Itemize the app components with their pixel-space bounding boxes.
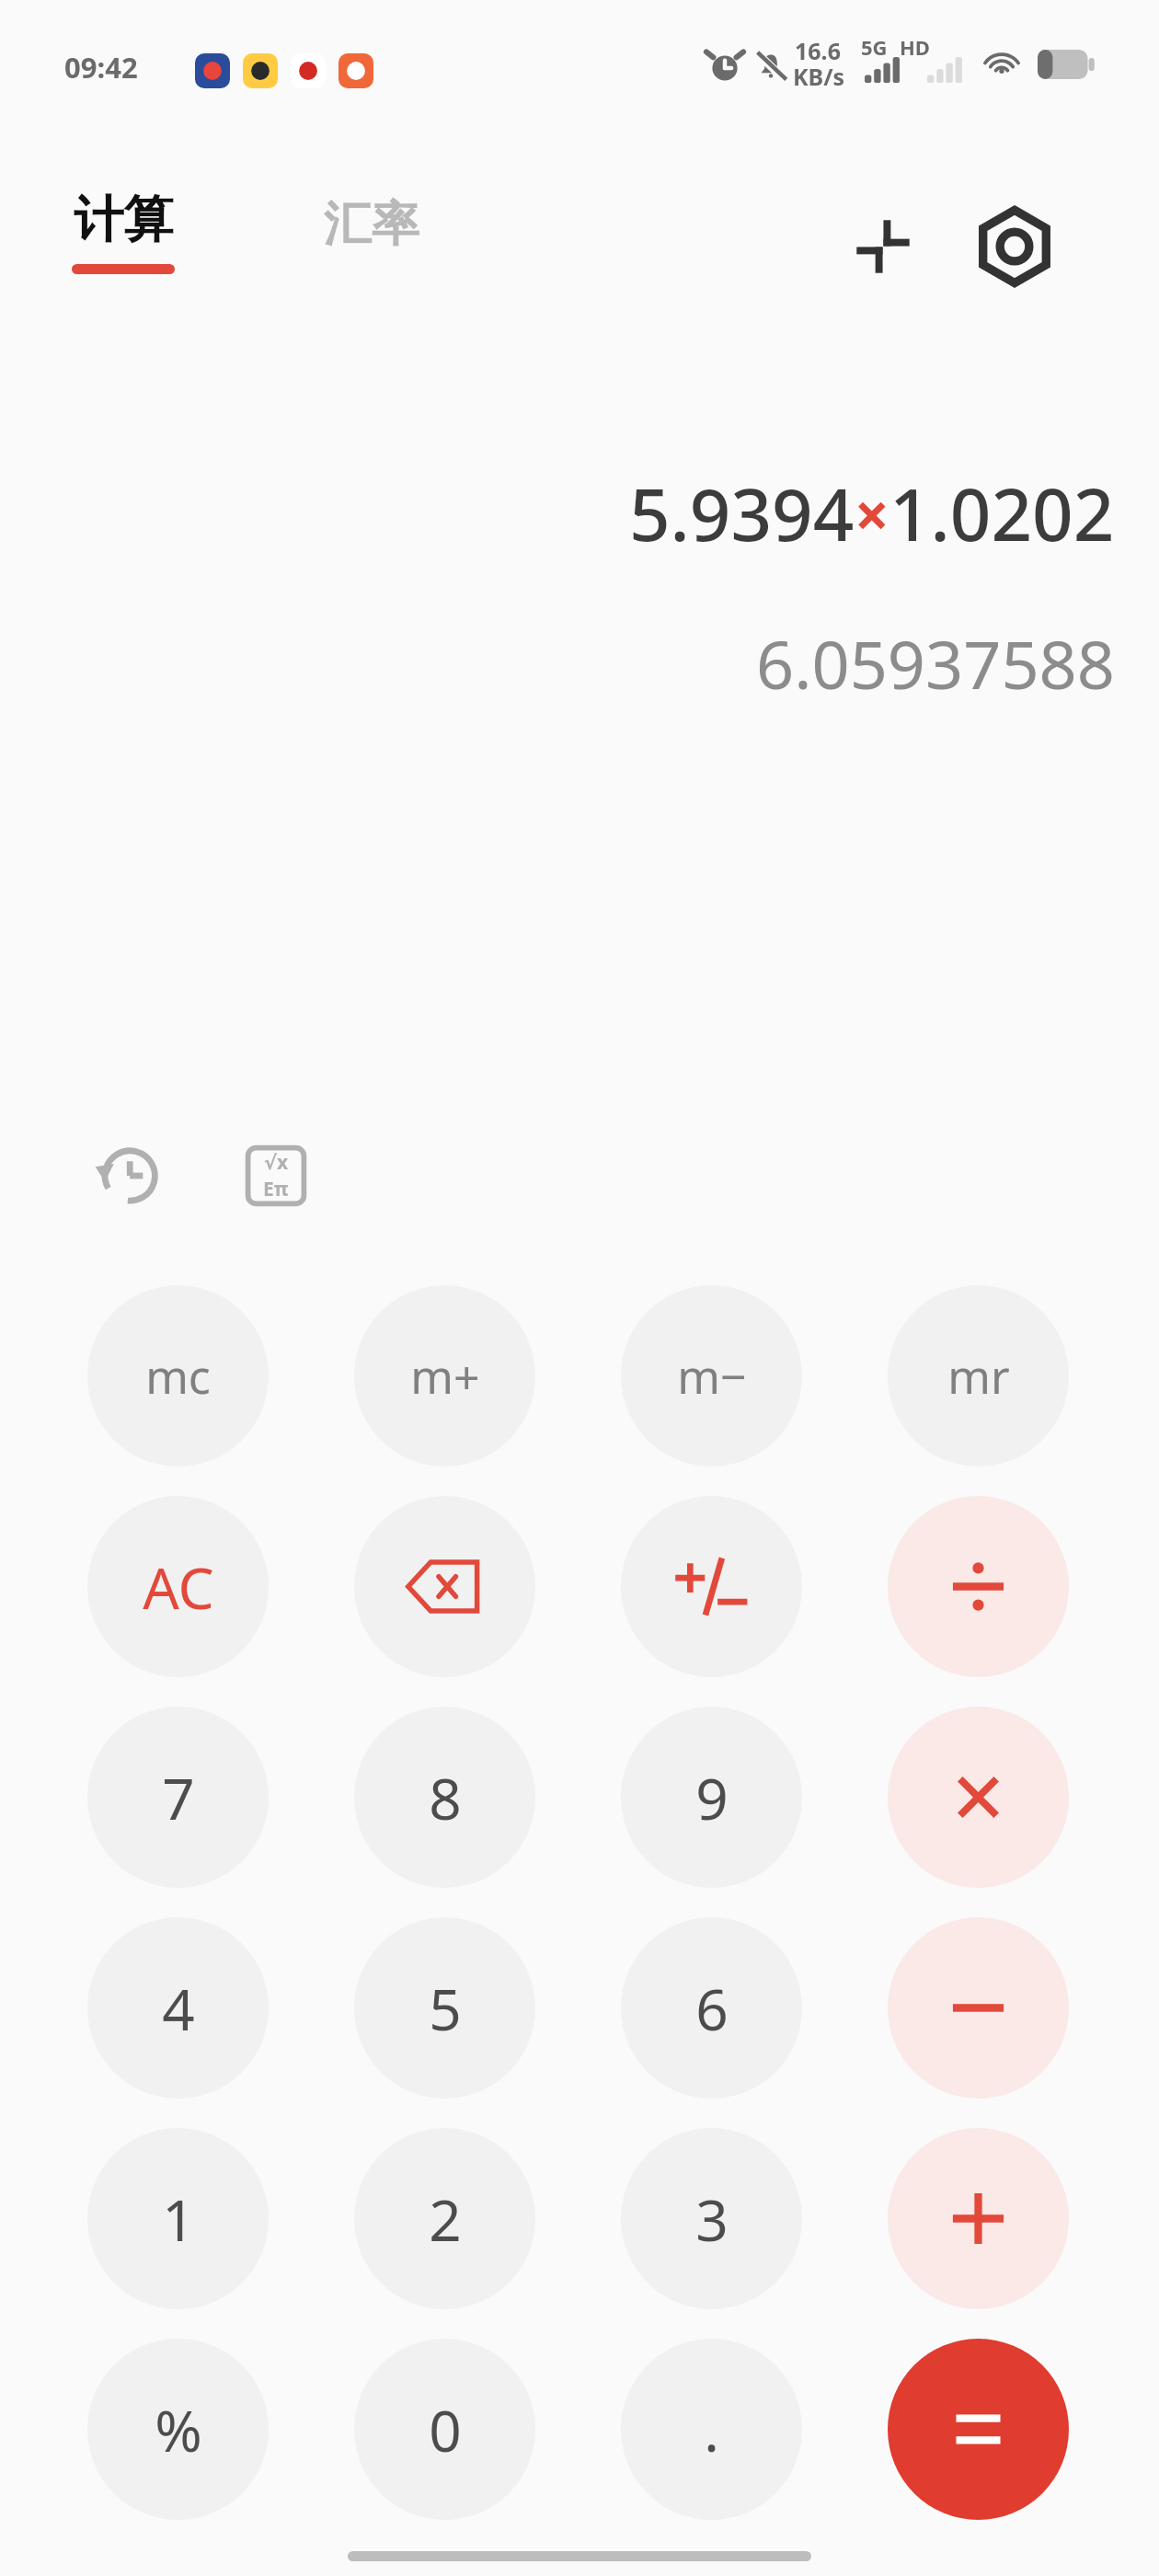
button[interactable]: History bbox=[90, 1139, 164, 1213]
staticText: 1.0202 bbox=[889, 465, 1115, 562]
button[interactable]: Multiply bbox=[888, 1707, 1069, 1888]
staticText: 09:42 bbox=[64, 48, 138, 86]
staticText: 6 bbox=[695, 1970, 729, 2047]
staticText: . bbox=[704, 2391, 719, 2468]
button[interactable]: mr bbox=[888, 1285, 1069, 1466]
button[interactable]: Toggle sign bbox=[621, 1496, 802, 1677]
button[interactable]: 9 bbox=[621, 1707, 802, 1888]
button[interactable]: 8 bbox=[354, 1707, 535, 1888]
staticText: 9 bbox=[695, 1759, 729, 1836]
staticText: 6.05937588 bbox=[756, 618, 1115, 708]
staticText: × bbox=[855, 472, 889, 555]
staticText: 0 bbox=[429, 2391, 462, 2468]
button[interactable]: 计算 bbox=[72, 189, 175, 274]
staticText: mc bbox=[145, 1345, 211, 1408]
button[interactable]: Subtract bbox=[888, 1917, 1069, 2099]
staticText: Eπ bbox=[263, 1176, 289, 1202]
staticText: 4 bbox=[162, 1970, 195, 2047]
staticText: m− bbox=[677, 1345, 747, 1408]
staticText: 7 bbox=[162, 1759, 195, 1836]
button[interactable]: Equals bbox=[888, 2339, 1069, 2520]
button[interactable]: m+ bbox=[354, 1285, 535, 1466]
button[interactable]: 3 bbox=[621, 2128, 802, 2309]
button[interactable]: Scientific mode bbox=[239, 1139, 313, 1213]
staticText: AC bbox=[143, 1548, 214, 1626]
button[interactable]: Divide bbox=[888, 1496, 1069, 1677]
staticText: mr bbox=[947, 1345, 1010, 1408]
button[interactable]: % bbox=[87, 2339, 269, 2520]
button[interactable]: Backspace bbox=[354, 1496, 535, 1677]
button[interactable]: mc bbox=[87, 1285, 269, 1466]
staticText: 计算 bbox=[74, 189, 173, 251]
staticText: 16.6 bbox=[795, 35, 841, 66]
button[interactable]: 5 bbox=[354, 1917, 535, 2099]
button[interactable]: m− bbox=[621, 1285, 802, 1466]
staticText: 8 bbox=[429, 1759, 462, 1836]
staticText: 3 bbox=[695, 2180, 729, 2258]
staticText: 5 bbox=[429, 1970, 462, 2047]
button[interactable]: 1 bbox=[87, 2128, 269, 2309]
button[interactable]: 6 bbox=[621, 1917, 802, 2099]
staticText: 2 bbox=[429, 2180, 462, 2258]
button[interactable]: Add bbox=[888, 2128, 1069, 2309]
button[interactable]: 2 bbox=[354, 2128, 535, 2309]
staticText: m+ bbox=[410, 1345, 480, 1408]
button[interactable]: Collapse bbox=[832, 196, 934, 297]
button[interactable]: 汇率 bbox=[324, 194, 419, 255]
button[interactable]: 0 bbox=[354, 2339, 535, 2520]
staticText: 汇率 bbox=[324, 194, 419, 255]
staticText: √x bbox=[264, 1149, 289, 1176]
staticText: 1 bbox=[162, 2180, 195, 2258]
staticText: 5.9394 bbox=[629, 465, 855, 562]
button[interactable]: 7 bbox=[87, 1707, 269, 1888]
staticText: HD bbox=[900, 33, 930, 61]
staticText: KB/s bbox=[793, 61, 845, 92]
staticText: % bbox=[155, 2391, 202, 2468]
button[interactable]: Settings bbox=[964, 196, 1065, 297]
staticText: 5G bbox=[861, 33, 888, 61]
button[interactable]: 4 bbox=[87, 1917, 269, 2099]
button[interactable]: . bbox=[621, 2339, 802, 2520]
button[interactable]: AC bbox=[87, 1496, 269, 1677]
